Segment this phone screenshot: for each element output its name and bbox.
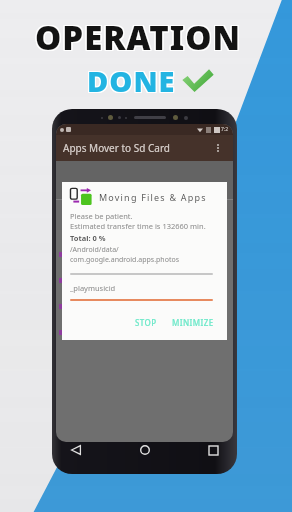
staticText: Moving Files & Apps: [99, 191, 207, 203]
staticText: OPERATION: [34, 14, 241, 59]
button[interactable]: STOP: [130, 314, 162, 331]
staticText: /Android/data/com.google.android.apps.ph…: [70, 245, 219, 265]
staticText: OPERATION: [36, 15, 243, 60]
staticText: DONE: [86, 60, 175, 99]
staticText: OPERATION: [35, 14, 242, 59]
staticText: OPERATION: [34, 16, 241, 61]
staticText: OPERATION: [34, 15, 241, 60]
button[interactable]: Home: [135, 440, 155, 460]
staticText: 7:2: [221, 126, 229, 133]
staticText: DONE: [86, 61, 175, 100]
staticText: Apps Mover to Sd Card: [63, 141, 170, 155]
staticText: DONE: [87, 61, 176, 100]
staticText: Estimated transfer time is 132660 min.: [70, 221, 206, 231]
staticText: Internal memory: [62, 231, 118, 241]
staticText: STOP: [135, 317, 157, 328]
staticText: OPERATION: [36, 14, 243, 59]
staticText: DONE: [86, 62, 175, 101]
staticText: DONE: [88, 62, 177, 101]
button[interactable]: More options: [210, 140, 226, 156]
staticText: DONE: [87, 60, 176, 99]
staticText: Please be patient.: [70, 211, 133, 221]
staticText: Total: 0 %: [70, 233, 106, 243]
button[interactable]: Recents: [203, 440, 223, 460]
staticText: OPERATION: [36, 16, 243, 61]
button[interactable]: Back: [66, 440, 86, 460]
staticText: OPERATION: [35, 15, 242, 60]
staticText: DONE: [87, 62, 176, 101]
staticText: DONE: [88, 60, 177, 99]
staticText: OPERATION: [35, 16, 242, 61]
staticText: DONE: [88, 61, 177, 100]
staticText: _playmusicid: [70, 283, 116, 293]
button[interactable]: MINIMIZE: [167, 314, 219, 331]
staticText: MINIMIZE: [172, 317, 214, 328]
